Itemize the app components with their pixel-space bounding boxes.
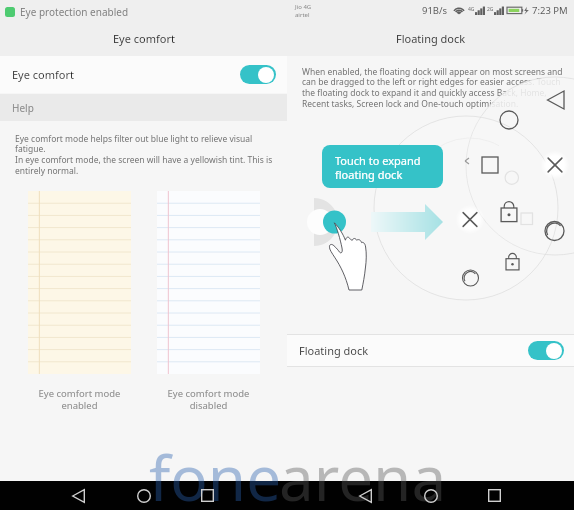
staticText: Touch to expand floating dock	[335, 153, 421, 182]
staticText: Eye comfort mode helps filter out blue l…	[15, 133, 273, 177]
staticText: 91B/s	[422, 4, 448, 17]
staticText: Eye comfort mode enabled	[28, 387, 131, 411]
staticText: airtel	[295, 11, 310, 19]
button[interactable]: Recents	[193, 481, 222, 510]
staticText: Eye comfort	[113, 31, 175, 46]
staticText: 2G	[487, 6, 494, 13]
button[interactable]: Home	[416, 481, 445, 510]
button[interactable]: Recents	[480, 481, 509, 510]
staticText: Eye comfort mode disabled	[157, 387, 260, 411]
button[interactable]: Home	[129, 481, 158, 510]
staticText: Floating dock	[299, 343, 369, 358]
staticText: Floating dock	[396, 31, 466, 46]
button[interactable]	[240, 65, 276, 84]
button[interactable]: Touch to expand floating dock	[322, 145, 443, 188]
staticText: 4G	[468, 6, 475, 13]
staticText: When enabled, the floating dock will app…	[302, 66, 563, 110]
button[interactable]: Back	[351, 481, 380, 510]
staticText: Eye protection enabled	[20, 5, 129, 19]
staticText: Jio 4G	[295, 3, 312, 11]
staticText: Help	[12, 101, 34, 115]
button[interactable]: Back	[64, 481, 93, 510]
staticText: fone	[149, 435, 282, 510]
button[interactable]	[528, 341, 564, 360]
staticText: 7:23 PM	[532, 4, 568, 17]
staticText: arena	[279, 435, 447, 510]
staticText: Eye comfort	[12, 67, 74, 82]
button[interactable]: Floating dock	[287, 335, 574, 366]
button[interactable]: Help	[0, 94, 287, 121]
button[interactable]: Eye comfort	[0, 56, 287, 93]
